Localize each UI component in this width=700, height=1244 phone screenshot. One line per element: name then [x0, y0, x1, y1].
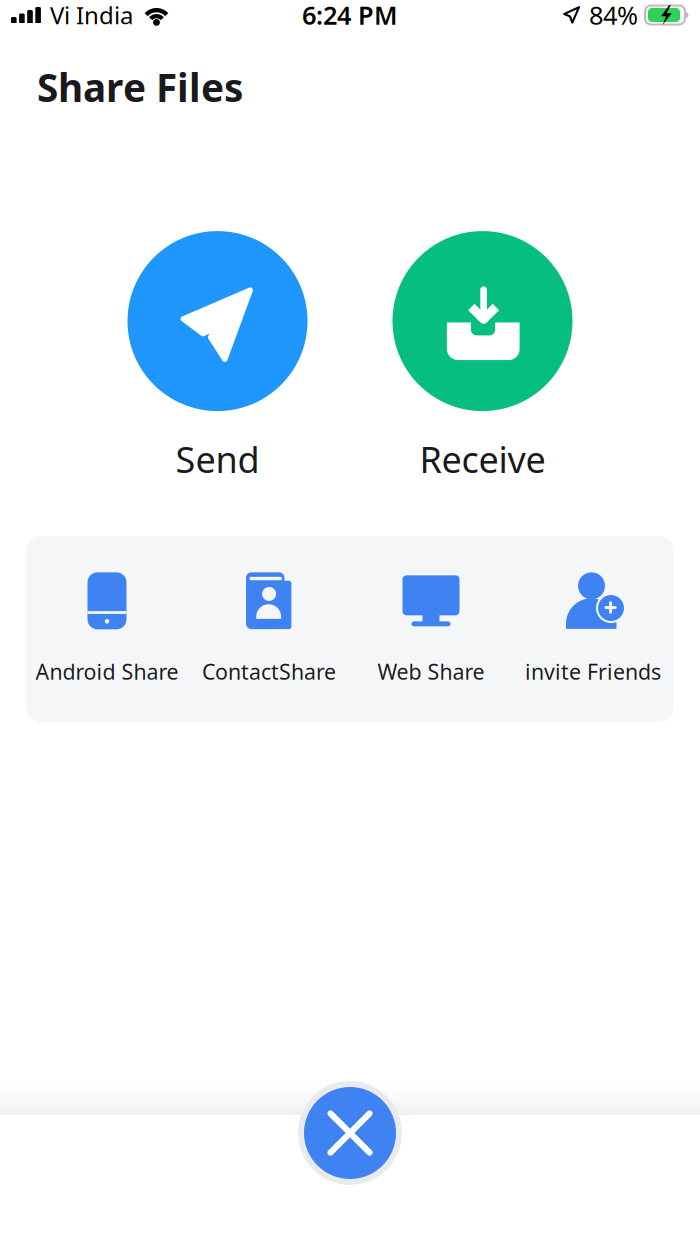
- button[interactable]: invite Friends: [512, 572, 674, 686]
- button[interactable]: Receive: [392, 231, 572, 483]
- staticText: Vi India: [50, 0, 133, 31]
- staticText: Android Share: [35, 657, 178, 686]
- button[interactable]: Send: [127, 231, 307, 483]
- staticText: 6:24 PM: [302, 0, 398, 32]
- staticText: Send: [175, 435, 259, 483]
- staticText: Share Files: [37, 61, 243, 113]
- staticText: invite Friends: [525, 657, 661, 686]
- button[interactable]: Close: [304, 1087, 396, 1179]
- staticText: ContactShare: [202, 657, 336, 686]
- staticText: Receive: [419, 435, 545, 483]
- staticText: 84%: [589, 0, 638, 32]
- button[interactable]: Web Share: [350, 572, 512, 686]
- button[interactable]: ContactShare: [188, 572, 350, 686]
- staticText: Web Share: [377, 657, 484, 686]
- button[interactable]: Android Share: [26, 572, 188, 686]
